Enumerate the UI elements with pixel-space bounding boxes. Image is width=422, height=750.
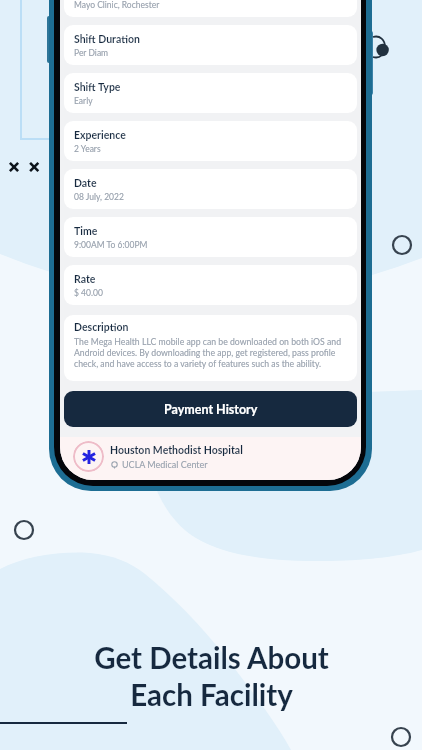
- button[interactable]: Experience: [64, 121, 357, 161]
- staticText: 9:00AM To 6:00PM: [74, 240, 148, 250]
- button[interactable]: Date: [64, 169, 357, 209]
- staticText: Shift Type: [74, 81, 121, 94]
- staticText: UCLA Medical Center: [122, 459, 208, 470]
- button[interactable]: Rate: [64, 265, 357, 305]
- staticText: The Mega Health LLC mobile app can be do…: [74, 336, 348, 369]
- other: Marker: [368, 30, 392, 68]
- staticText: $ 40.00: [74, 288, 103, 298]
- button[interactable]: Location: [64, 0, 357, 17]
- staticText: Mayo Clinic, Rochester: [74, 0, 160, 10]
- button[interactable]: Time: [64, 217, 357, 257]
- staticText: Early: [74, 96, 93, 106]
- staticText: 2 Years: [74, 144, 101, 154]
- button[interactable]: Payment History: [64, 391, 357, 427]
- staticText: Houston Methodist Hospital: [110, 444, 243, 457]
- button[interactable]: Shift Duration: [64, 25, 357, 65]
- button[interactable]: Houston Methodist Hospital: [60, 437, 361, 480]
- staticText: Per Diam: [74, 48, 109, 58]
- staticText: Each Facility: [130, 677, 293, 712]
- staticText: Get Details About: [94, 640, 329, 675]
- staticText: Date: [74, 177, 97, 190]
- staticText: Description: [74, 321, 129, 334]
- staticText: Payment History: [164, 402, 258, 417]
- staticText: Time: [74, 225, 98, 238]
- staticText: Rate: [74, 273, 96, 286]
- staticText: Experience: [74, 129, 126, 142]
- button[interactable]: Description: [64, 315, 357, 381]
- staticText: 08 July, 2022: [74, 192, 124, 202]
- button[interactable]: Shift Type: [64, 73, 357, 113]
- staticText: Shift Duration: [74, 33, 140, 46]
